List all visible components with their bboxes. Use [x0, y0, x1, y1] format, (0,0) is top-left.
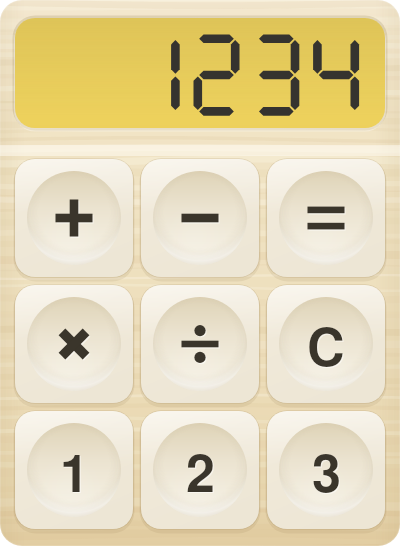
- button[interactable]: Equals: [267, 159, 385, 277]
- button[interactable]: Three: [267, 411, 385, 529]
- button[interactable]: Clear: [267, 285, 385, 403]
- staticText: C: [307, 307, 345, 381]
- button[interactable]: Plus: [15, 159, 133, 277]
- staticText: 1: [60, 433, 89, 507]
- button[interactable]: Minus: [141, 159, 259, 277]
- staticText: 3: [312, 433, 341, 507]
- staticText: 3: [313, 434, 342, 508]
- button[interactable]: Two: [141, 411, 259, 529]
- button[interactable]: One: [15, 411, 133, 529]
- button[interactable]: Multiply: [15, 285, 133, 403]
- staticText: 1: [61, 434, 90, 508]
- button[interactable]: Divide: [141, 285, 259, 403]
- staticText: 2: [187, 434, 216, 508]
- staticText: C: [308, 308, 346, 382]
- staticText: 2: [186, 433, 215, 507]
